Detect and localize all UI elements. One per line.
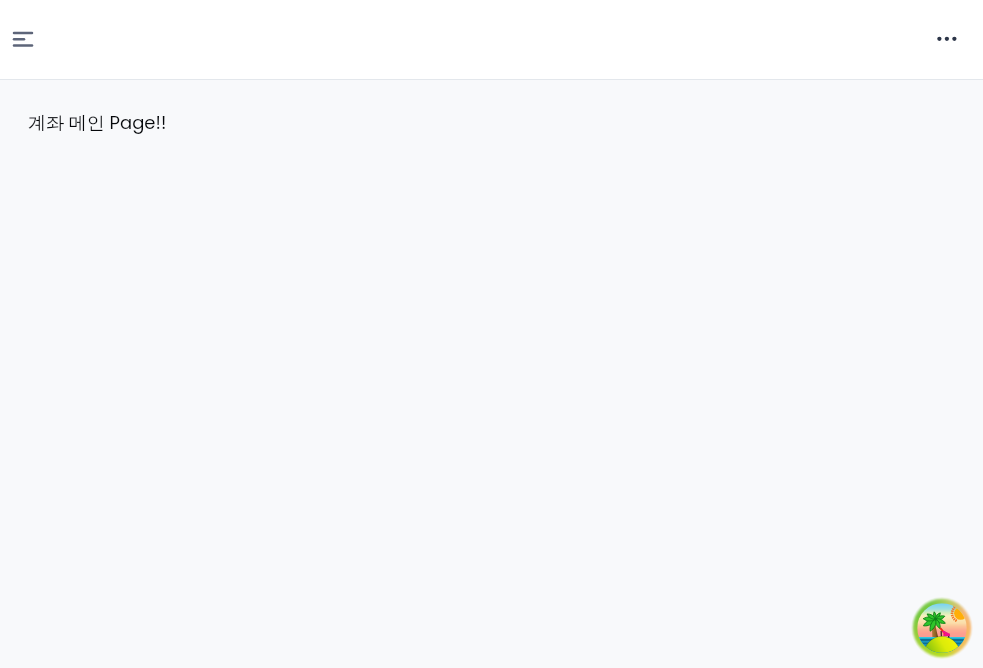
button[interactable]: More options [933,20,975,58]
staticText: 계좌 메인 Page!! [28,110,167,135]
button[interactable]: Open navigation menu [2,20,44,58]
button[interactable]: Island [911,597,973,659]
